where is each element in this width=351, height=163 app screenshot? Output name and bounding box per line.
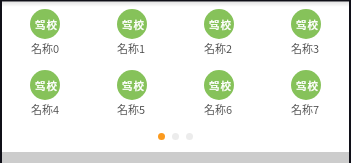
staticText: 名称4 bbox=[31, 101, 60, 117]
staticText: 名称1 bbox=[117, 40, 146, 56]
button[interactable]: Page 3 bbox=[186, 133, 193, 140]
staticText: 名称6 bbox=[204, 101, 233, 117]
staticText: 驾校 bbox=[122, 17, 145, 32]
button[interactable]: 驾校 bbox=[88, 70, 175, 117]
button[interactable]: Page 2 bbox=[172, 133, 179, 140]
staticText: 驾校 bbox=[296, 78, 319, 93]
button[interactable]: 驾校 bbox=[175, 9, 262, 56]
staticText: 驾校 bbox=[35, 17, 58, 32]
staticText: 驾校 bbox=[209, 17, 232, 32]
button[interactable]: 驾校 bbox=[175, 70, 262, 117]
button[interactable]: Page 1 bbox=[158, 133, 165, 140]
staticText: 驾校 bbox=[209, 78, 232, 93]
staticText: 名称7 bbox=[291, 101, 320, 117]
button[interactable]: 驾校 bbox=[88, 9, 175, 56]
staticText: 驾校 bbox=[35, 78, 58, 93]
staticText: 驾校 bbox=[296, 17, 319, 32]
button[interactable]: 驾校 bbox=[2, 70, 88, 117]
button[interactable]: 驾校 bbox=[262, 70, 349, 117]
staticText: 驾校 bbox=[122, 78, 145, 93]
button[interactable]: 驾校 bbox=[262, 9, 349, 56]
staticText: 名称0 bbox=[31, 40, 60, 56]
button[interactable]: 驾校 bbox=[2, 9, 88, 56]
staticText: 名称3 bbox=[291, 40, 320, 56]
staticText: 名称5 bbox=[117, 101, 146, 117]
staticText: 名称2 bbox=[204, 40, 233, 56]
